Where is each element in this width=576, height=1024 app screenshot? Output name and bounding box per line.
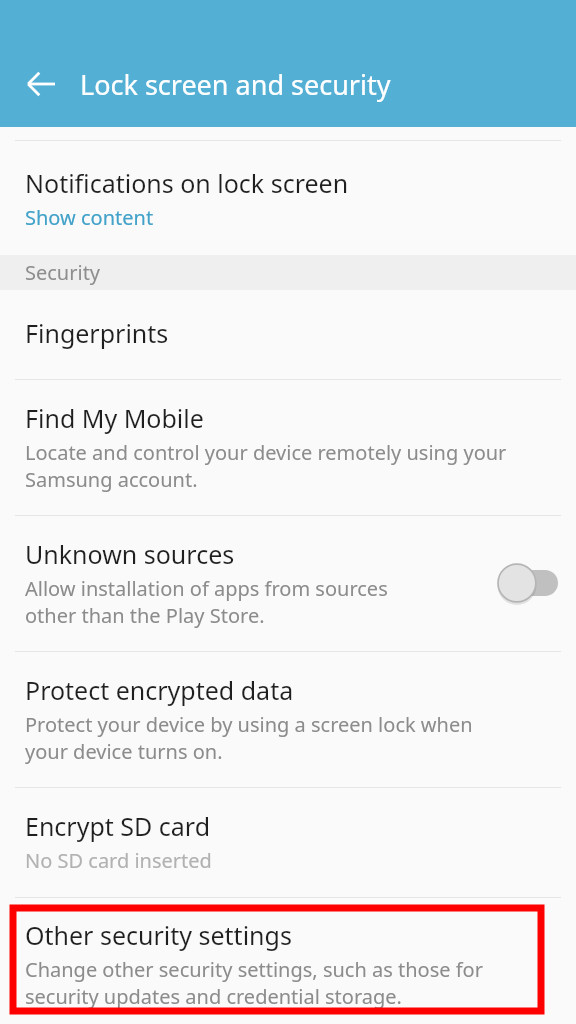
staticText: Security bbox=[25, 259, 101, 286]
button[interactable]: Unknown sources bbox=[0, 516, 576, 651]
staticText: Lock screen and security bbox=[80, 66, 391, 103]
button[interactable]: Notifications on lock screen bbox=[0, 141, 576, 255]
staticText: Allow installation of apps from sources … bbox=[25, 575, 388, 629]
staticText: Protect encrypted data bbox=[25, 673, 294, 707]
button[interactable]: Back bbox=[19, 62, 63, 106]
staticText: Locate and control your device remotely … bbox=[25, 439, 507, 493]
button[interactable]: Other security settings bbox=[0, 898, 576, 1024]
staticText: Protect your device by using a screen lo… bbox=[25, 711, 473, 765]
staticText: Change other security settings, such as … bbox=[25, 956, 483, 1010]
button[interactable]: Fingerprints bbox=[0, 290, 576, 379]
button[interactable]: Find My Mobile bbox=[0, 380, 576, 515]
staticText: Unknown sources bbox=[25, 537, 235, 571]
button[interactable]: Encrypt SD card bbox=[0, 788, 576, 897]
staticText: No SD card inserted bbox=[25, 847, 212, 874]
button[interactable]: Unknown sources toggle bbox=[496, 562, 560, 604]
staticText: Show content bbox=[25, 204, 154, 231]
staticText: Find My Mobile bbox=[25, 401, 204, 435]
staticText: Encrypt SD card bbox=[25, 809, 211, 843]
staticText: Notifications on lock screen bbox=[25, 166, 349, 200]
staticText: Other security settings bbox=[25, 918, 292, 952]
button[interactable]: Protect encrypted data bbox=[0, 652, 576, 787]
staticText: Fingerprints bbox=[25, 316, 169, 350]
